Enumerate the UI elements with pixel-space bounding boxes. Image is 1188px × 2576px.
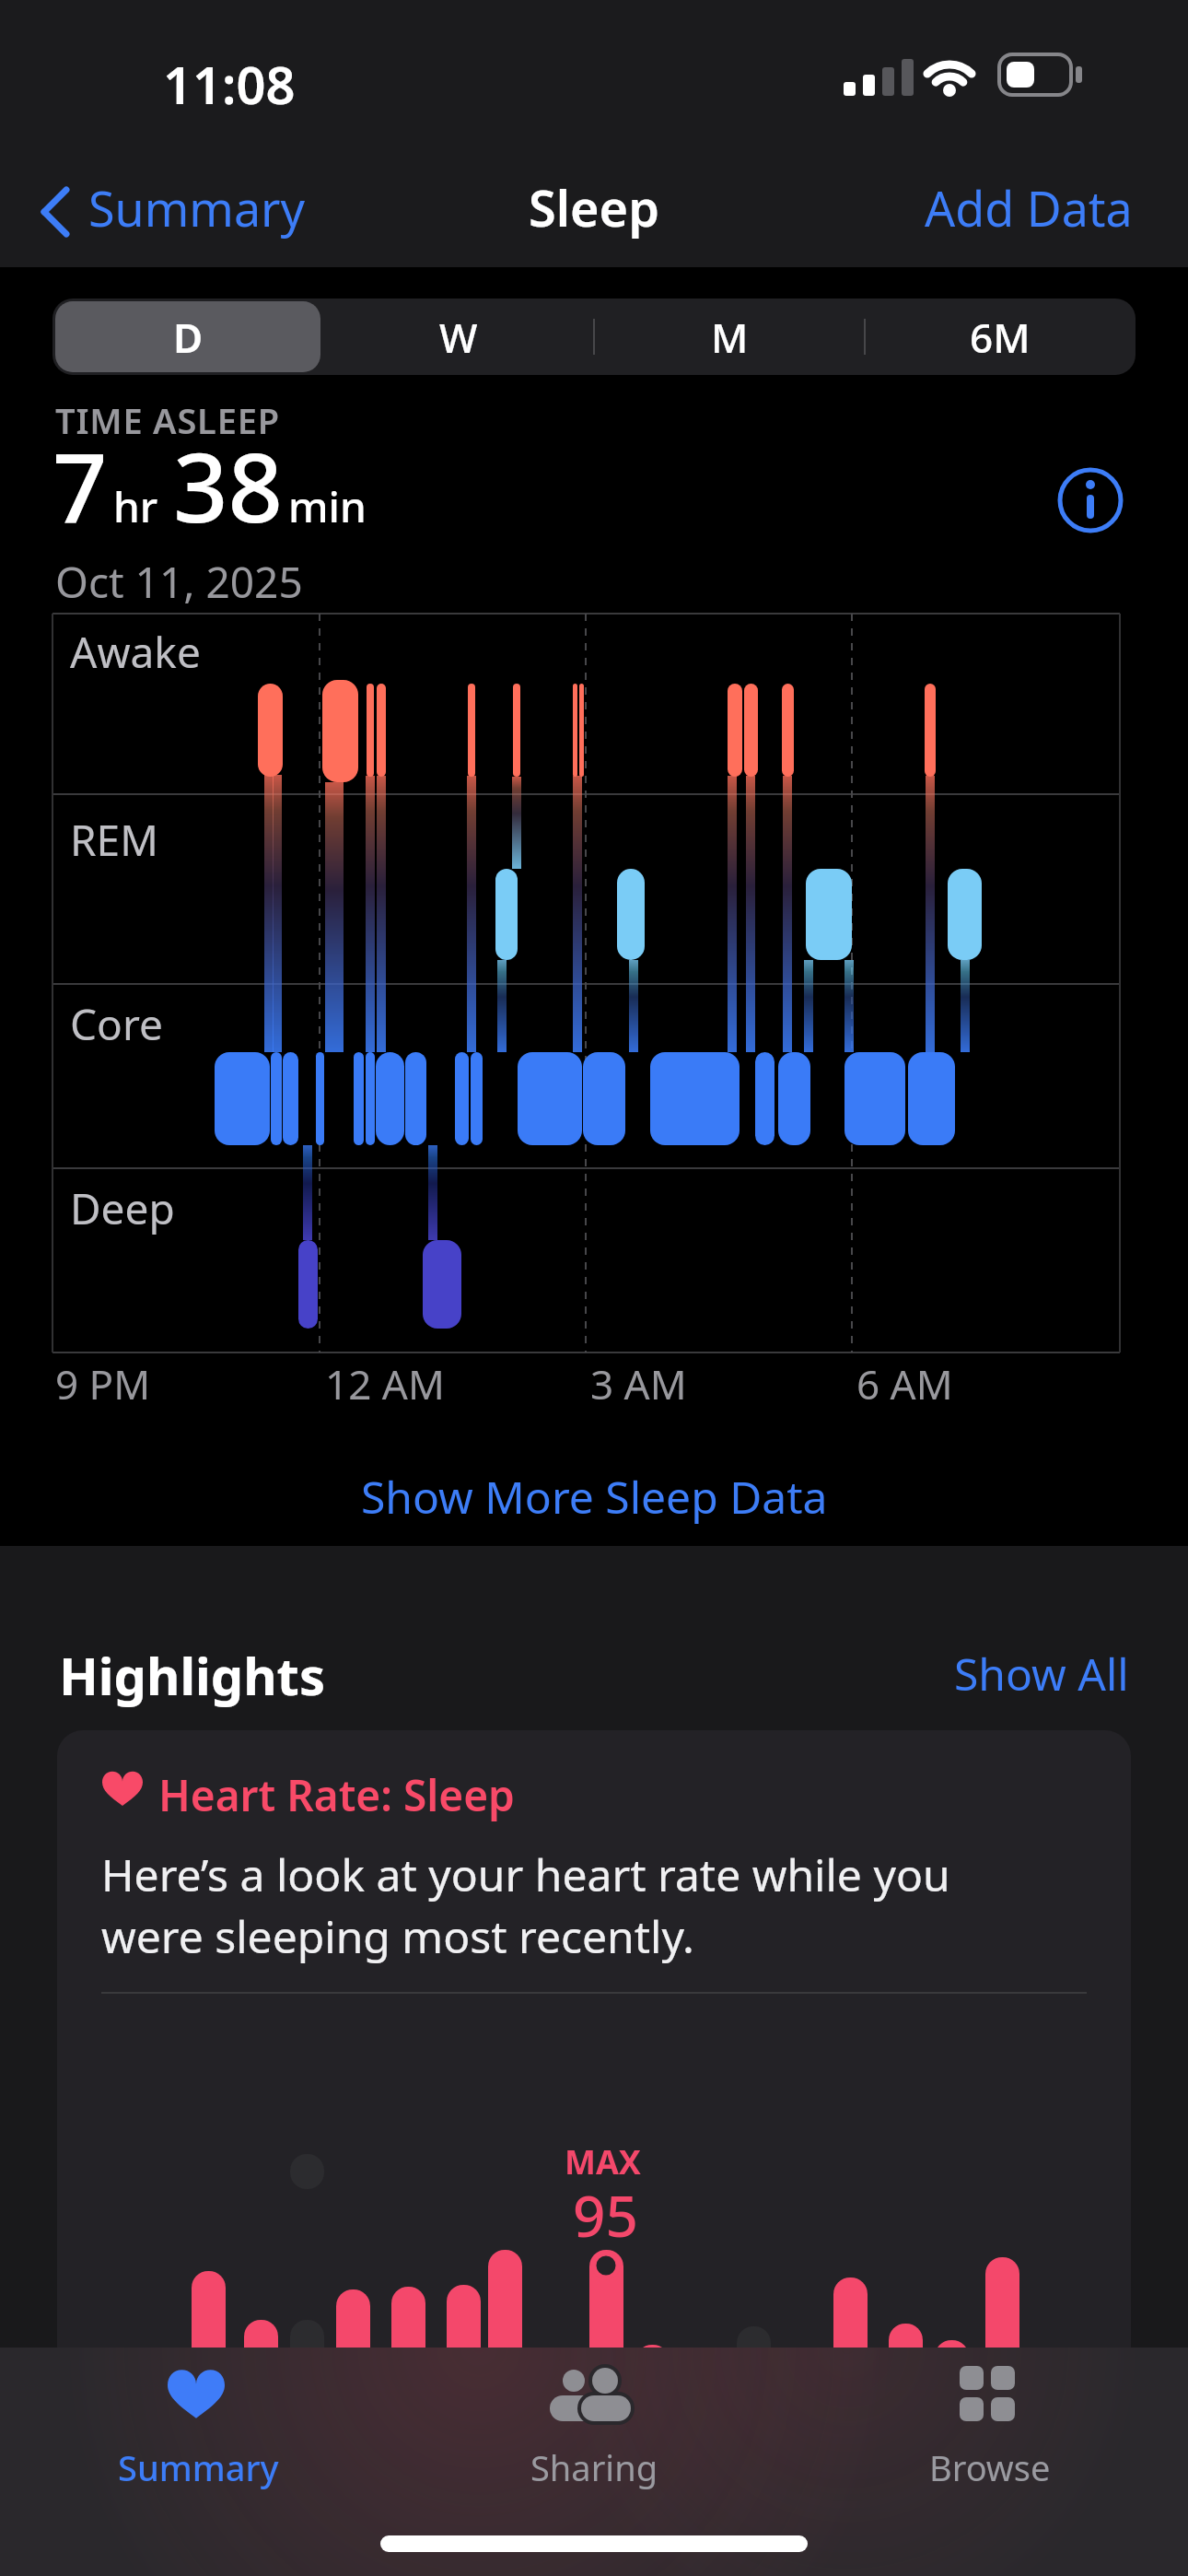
staticText: M xyxy=(711,310,749,365)
button[interactable]: Summary xyxy=(0,2348,396,2576)
button[interactable]: W xyxy=(323,299,594,375)
staticText: MAX xyxy=(565,2139,641,2184)
staticText: hr xyxy=(113,477,158,535)
button[interactable]: D xyxy=(55,301,320,372)
staticText: 12 AM xyxy=(325,1356,445,1411)
staticText: Summary xyxy=(118,2443,279,2491)
button[interactable]: Sharing xyxy=(396,2348,792,2576)
staticText: Oct 11, 2025 xyxy=(55,553,303,611)
staticText: Awake xyxy=(70,623,201,681)
staticText: Here’s a look at your heart rate while y… xyxy=(101,1844,950,1966)
staticText: min xyxy=(288,477,367,535)
staticText: 6 AM xyxy=(856,1356,953,1411)
button[interactable]: 6M xyxy=(865,299,1136,375)
staticText: Sharing xyxy=(530,2443,658,2491)
staticText: 38 xyxy=(173,420,283,551)
staticText: TIME ASLEEP xyxy=(55,396,280,444)
button[interactable]: M xyxy=(594,299,865,375)
staticText: D xyxy=(173,310,204,365)
staticText: Heart Rate: Sleep xyxy=(158,1766,515,1824)
staticText: 9 PM xyxy=(55,1356,151,1411)
staticText: Sleep xyxy=(529,173,659,241)
staticText: Core xyxy=(70,995,163,1053)
staticText: 95 xyxy=(573,2176,638,2254)
staticText: Highlights xyxy=(59,1640,326,1710)
staticText: 11:08 xyxy=(163,49,296,119)
staticText: Deep xyxy=(70,1179,175,1237)
button[interactable]: Show All xyxy=(954,1644,1129,1704)
button[interactable] xyxy=(57,1730,1131,2576)
staticText: Browse xyxy=(929,2443,1051,2491)
button[interactable] xyxy=(1060,470,1121,531)
staticText: W xyxy=(439,310,478,365)
staticText: 7 xyxy=(52,420,108,551)
staticText: REM xyxy=(70,811,158,869)
button[interactable]: Browse xyxy=(792,2348,1188,2576)
button[interactable]: Show More Sleep Data xyxy=(361,1467,828,1527)
button[interactable]: Add Data xyxy=(925,175,1133,240)
staticText: 6M xyxy=(970,310,1031,365)
staticText: 3 AM xyxy=(590,1356,687,1411)
